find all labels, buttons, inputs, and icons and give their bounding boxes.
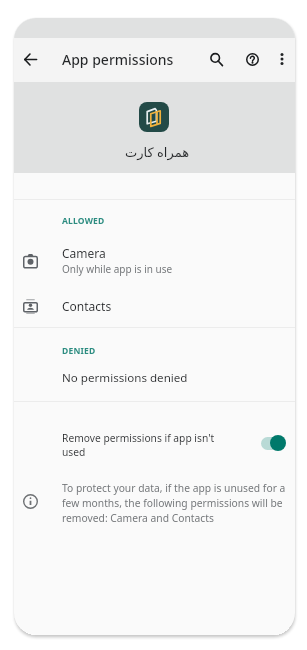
staticText: Only while app is in use (62, 262, 173, 276)
button[interactable]: More options (270, 47, 294, 71)
button[interactable]: Remove permissions if app isn't used (14, 407, 295, 469)
staticText: ALLOWED (62, 215, 105, 227)
staticText: Camera (62, 245, 106, 261)
staticText: To protect your data, if the app is unus… (62, 481, 288, 525)
button[interactable]: DENIED (62, 345, 96, 357)
button[interactable]: Contacts (14, 286, 295, 326)
button[interactable]: Back (18, 47, 42, 71)
staticText: DENIED (62, 345, 96, 357)
staticText: همراه کارت (125, 143, 190, 161)
button[interactable]: No permissions denied (14, 365, 295, 391)
button[interactable]: Search (204, 47, 228, 71)
button[interactable]: Help (240, 47, 264, 71)
staticText: App permissions (62, 50, 174, 69)
staticText: No permissions denied (62, 370, 188, 386)
button[interactable]: Camera (14, 237, 295, 283)
button[interactable]: ALLOWED (62, 215, 105, 227)
staticText: Contacts (62, 298, 112, 314)
staticText: Remove permissions if app isn't used (62, 431, 220, 459)
